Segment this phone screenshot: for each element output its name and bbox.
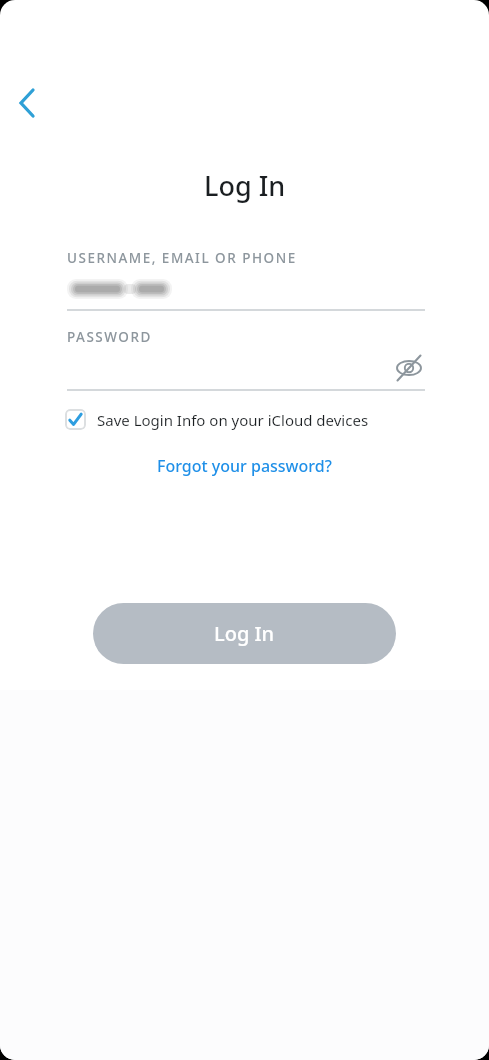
staticText: Forgot your password?: [157, 455, 332, 477]
staticText: USERNAME, EMAIL OR PHONE: [67, 249, 297, 267]
button[interactable]: Log In: [93, 603, 396, 664]
button[interactable]: [392, 351, 426, 385]
button[interactable]: Forgot your password?: [157, 455, 332, 477]
staticText: Log In: [204, 167, 286, 204]
button[interactable]: [7, 83, 47, 123]
button[interactable]: Save Login Info on your iCloud devices: [65, 409, 369, 430]
staticText: Save Login Info on your iCloud devices: [97, 410, 369, 430]
staticText: Log In: [214, 620, 275, 647]
staticText: PASSWORD: [67, 328, 152, 346]
